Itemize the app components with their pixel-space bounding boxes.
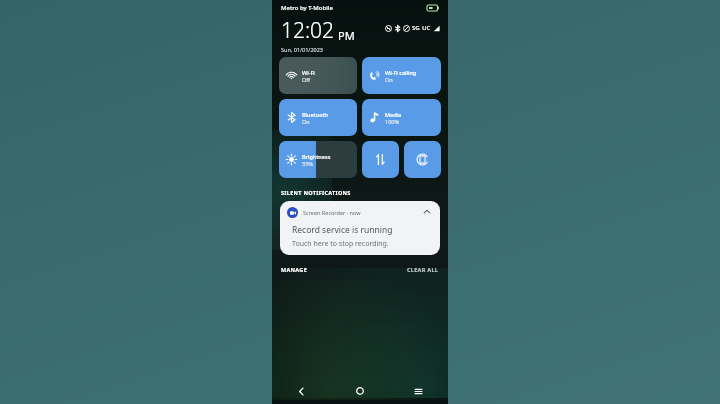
button[interactable]: Home (330, 378, 389, 404)
button[interactable]: Media (362, 99, 441, 136)
staticText: Bluetooth (302, 111, 329, 118)
staticText: Touch here to stop recording. (292, 239, 389, 249)
staticText: SG (412, 24, 420, 32)
button[interactable]: CLEAR ALL (407, 264, 439, 275)
button[interactable]: Auto rotate (404, 141, 441, 178)
staticText: Metro by T-Mobile (281, 4, 333, 12)
staticText: Brightness (302, 153, 331, 160)
staticText: PM (338, 28, 355, 43)
staticText: 35% (302, 160, 313, 167)
staticText: SILENT NOTIFICATIONS (281, 189, 351, 196)
staticText: UC (422, 24, 431, 32)
staticText: 100% (385, 118, 400, 125)
button[interactable]: Back (272, 378, 330, 404)
button[interactable]: Bluetooth (279, 99, 357, 136)
button[interactable]: Wi-Fi calling (362, 57, 441, 94)
staticText: MANAGE (281, 266, 308, 273)
staticText: Screen Recorder · now (303, 209, 361, 216)
staticText: CLEAR ALL (407, 266, 439, 273)
button[interactable]: MANAGE (281, 264, 308, 275)
staticText: Media (385, 111, 402, 118)
staticText: Sun, 01/01/2023 (281, 46, 323, 53)
staticText: Off (302, 76, 311, 83)
staticText: On (385, 76, 393, 83)
button[interactable]: Wi-Fi (279, 57, 357, 94)
staticText: Record service is running (292, 224, 393, 236)
button[interactable]: Screen Recorder · now (280, 201, 440, 255)
button[interactable]: Recent apps (389, 378, 448, 404)
button[interactable]: Brightness (279, 141, 357, 178)
button[interactable]: Collapse (421, 206, 433, 218)
staticText: 12:02 (281, 16, 335, 45)
button[interactable]: Data usage (362, 141, 399, 178)
staticText: Wi-Fi (302, 69, 315, 76)
staticText: Wi-Fi calling (385, 69, 417, 76)
staticText: On (302, 118, 310, 125)
